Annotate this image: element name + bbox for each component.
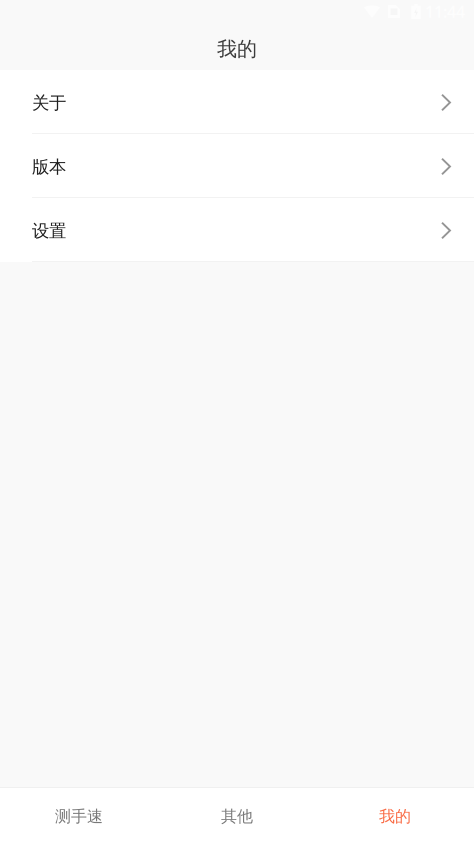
staticText: 其他	[221, 807, 253, 826]
button[interactable]: 测手速	[0, 788, 158, 842]
staticText: 我的	[217, 37, 257, 61]
staticText: 设置	[32, 220, 66, 242]
staticText: 测手速	[55, 807, 103, 826]
button[interactable]: 版本	[0, 134, 474, 198]
button[interactable]: 我的	[316, 788, 474, 842]
button[interactable]: 设置	[0, 198, 474, 262]
button[interactable]: 关于	[0, 70, 474, 134]
staticText: 版本	[32, 156, 66, 178]
staticText: 关于	[32, 92, 66, 114]
button[interactable]: 其他	[158, 788, 316, 842]
staticText: 我的	[379, 807, 411, 826]
